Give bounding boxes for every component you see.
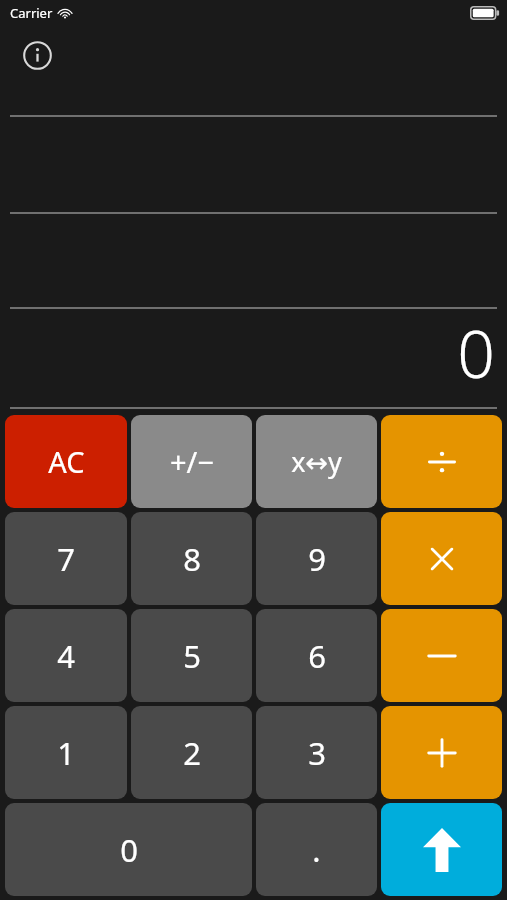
button[interactable]: Multiply (381, 512, 502, 605)
staticText: 2 (183, 732, 201, 774)
button[interactable]: Divide (381, 415, 502, 508)
staticText: +/− (170, 442, 214, 481)
staticText: x↔y (291, 443, 342, 480)
button[interactable]: AC (5, 415, 127, 508)
button[interactable]: 5 (131, 609, 252, 702)
button[interactable]: Enter (381, 803, 502, 896)
staticText: 0 (120, 829, 138, 871)
button[interactable]: . (256, 803, 377, 896)
button[interactable]: 1 (5, 706, 127, 799)
button[interactable]: 4 (5, 609, 127, 702)
button[interactable]: 7 (5, 512, 127, 605)
staticText: Carrier (10, 4, 53, 22)
button[interactable]: Info (15, 33, 59, 77)
button[interactable]: 0 (5, 803, 252, 896)
staticText: 0 (457, 307, 495, 397)
staticText: . (312, 829, 321, 871)
staticText: 6 (308, 635, 326, 677)
staticText: 7 (57, 538, 75, 580)
button[interactable]: x↔y (256, 415, 377, 508)
staticText: 5 (183, 635, 201, 677)
staticText: 3 (308, 732, 326, 774)
button[interactable]: Add (381, 706, 502, 799)
button[interactable]: Subtract (381, 609, 502, 702)
button[interactable]: +/− (131, 415, 252, 508)
staticText: 4 (57, 635, 75, 677)
button[interactable]: 2 (131, 706, 252, 799)
button[interactable]: 6 (256, 609, 377, 702)
staticText: 9 (308, 538, 326, 580)
button[interactable]: 8 (131, 512, 252, 605)
staticText: 8 (183, 538, 201, 580)
button[interactable]: 3 (256, 706, 377, 799)
staticText: 1 (57, 732, 75, 774)
staticText: AC (48, 442, 85, 481)
button[interactable]: 9 (256, 512, 377, 605)
